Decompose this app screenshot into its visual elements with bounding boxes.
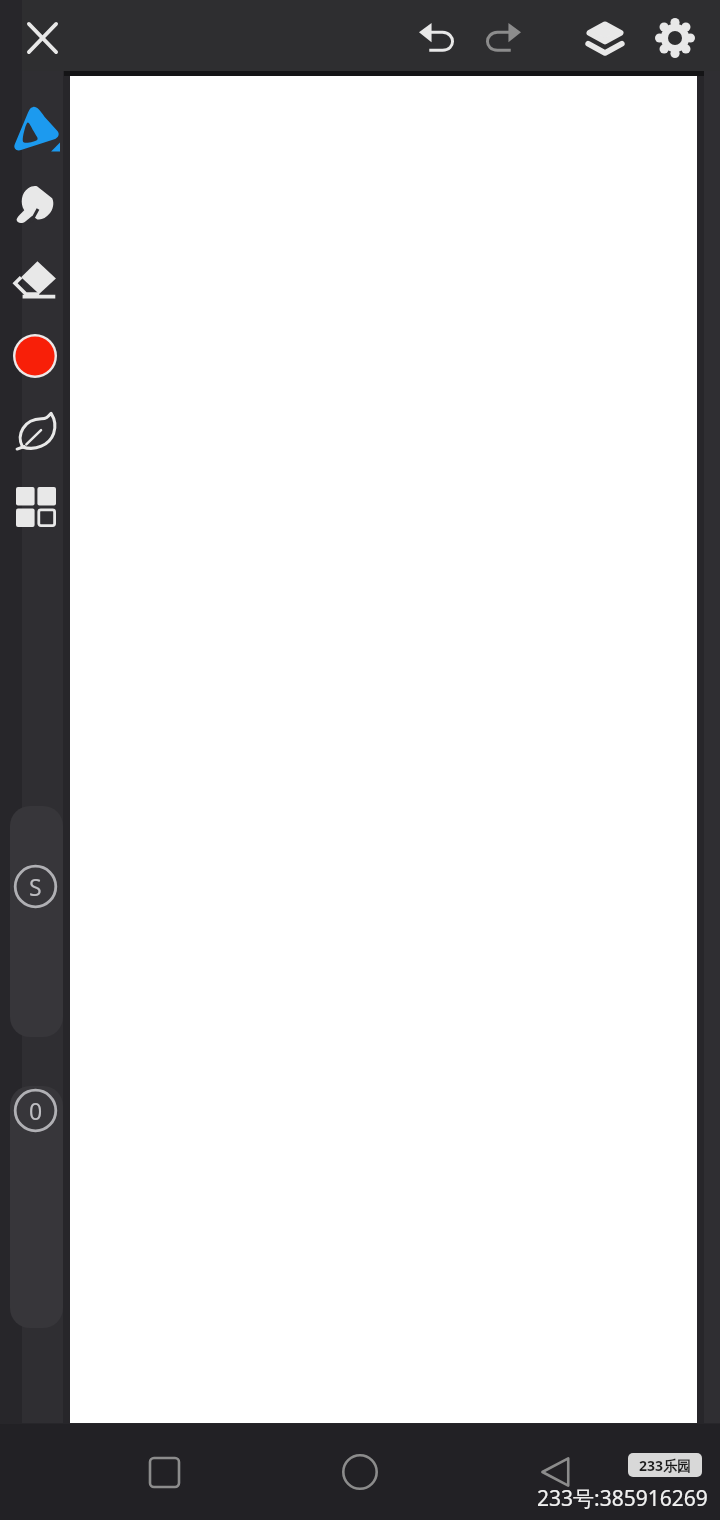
button[interactable]: Settings [642, 5, 708, 71]
button[interactable]: Brush size [10, 806, 63, 1037]
button[interactable]: Layers [571, 7, 639, 70]
staticText: 0 [29, 1095, 43, 1126]
button[interactable]: Eraser [8, 245, 65, 316]
staticText: 233号:385916269 [537, 1484, 708, 1513]
button[interactable]: Brush opacity [10, 1086, 63, 1328]
button[interactable]: Recents [132, 1440, 196, 1504]
staticText: S [29, 871, 42, 902]
button[interactable]: Home [328, 1440, 392, 1504]
button[interactable]: Smudge [8, 171, 65, 239]
button[interactable]: Colour [8, 320, 65, 392]
button[interactable]: Redo [470, 10, 534, 67]
button[interactable]: Back [524, 1440, 588, 1504]
button[interactable]: Brush [8, 91, 65, 166]
button[interactable]: Tool palette [8, 473, 65, 541]
staticText: 233乐园 [639, 1456, 692, 1475]
button[interactable]: Close [14, 9, 71, 67]
button[interactable]: Undo [406, 10, 470, 67]
button[interactable]: Effects [8, 396, 65, 466]
